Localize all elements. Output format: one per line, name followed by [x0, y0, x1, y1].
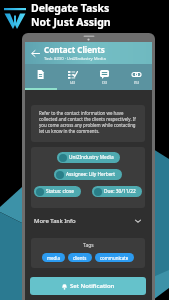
- other: Checklist: [68, 70, 77, 79]
- button[interactable]: Set Notification: [30, 277, 146, 295]
- staticText: Not Just Assign: [31, 15, 111, 29]
- staticText: clients: [73, 255, 87, 261]
- staticText: Status: close: [46, 188, 75, 195]
- button[interactable]: communicate: [95, 253, 134, 262]
- staticText: Delegate Tasks: [31, 1, 110, 15]
- staticText: media: [47, 255, 60, 261]
- staticText: (3): [102, 80, 107, 86]
- staticText: Contact Clients: [44, 44, 105, 55]
- button[interactable]: Back: [25, 42, 152, 64]
- button[interactable]: Back: [29, 47, 41, 59]
- button[interactable]: Assignee: Lily Herbert: [54, 169, 122, 180]
- button[interactable]: Due: 30/11/22: [92, 186, 142, 197]
- button[interactable]: Refer to the contact information we have…: [31, 105, 145, 142]
- other: Attachments: [132, 70, 141, 79]
- button[interactable]: media: [42, 253, 65, 262]
- staticText: Uni2Industry Media: [69, 154, 114, 161]
- staticText: (5): [134, 80, 139, 86]
- staticText: (4): [70, 80, 75, 86]
- button[interactable]: clients: [68, 253, 92, 262]
- other: Comments: [100, 70, 109, 79]
- button[interactable]: Uni2Industry Media: [57, 152, 120, 163]
- button[interactable]: Details: [25, 64, 56, 90]
- other: Details: [36, 70, 45, 79]
- staticText: Tags: [83, 242, 94, 249]
- button[interactable]: Comments: [88, 64, 120, 90]
- button[interactable]: More Task Info: [31, 212, 145, 230]
- staticText: Assignee: Lily Herbert: [66, 171, 116, 178]
- staticText: Task #230 · Uni2Industry Media: [44, 56, 106, 62]
- staticText: Set Notification: [70, 282, 115, 290]
- staticText: More Task Info: [34, 217, 76, 225]
- staticText: communicate: [100, 255, 129, 261]
- button[interactable]: Checklist: [56, 64, 88, 90]
- staticText: Due: 30/11/22: [104, 188, 136, 195]
- button[interactable]: Attachments: [120, 64, 152, 90]
- staticText: Refer to the contact information we have…: [39, 110, 137, 134]
- button[interactable]: Status: close: [34, 186, 81, 197]
